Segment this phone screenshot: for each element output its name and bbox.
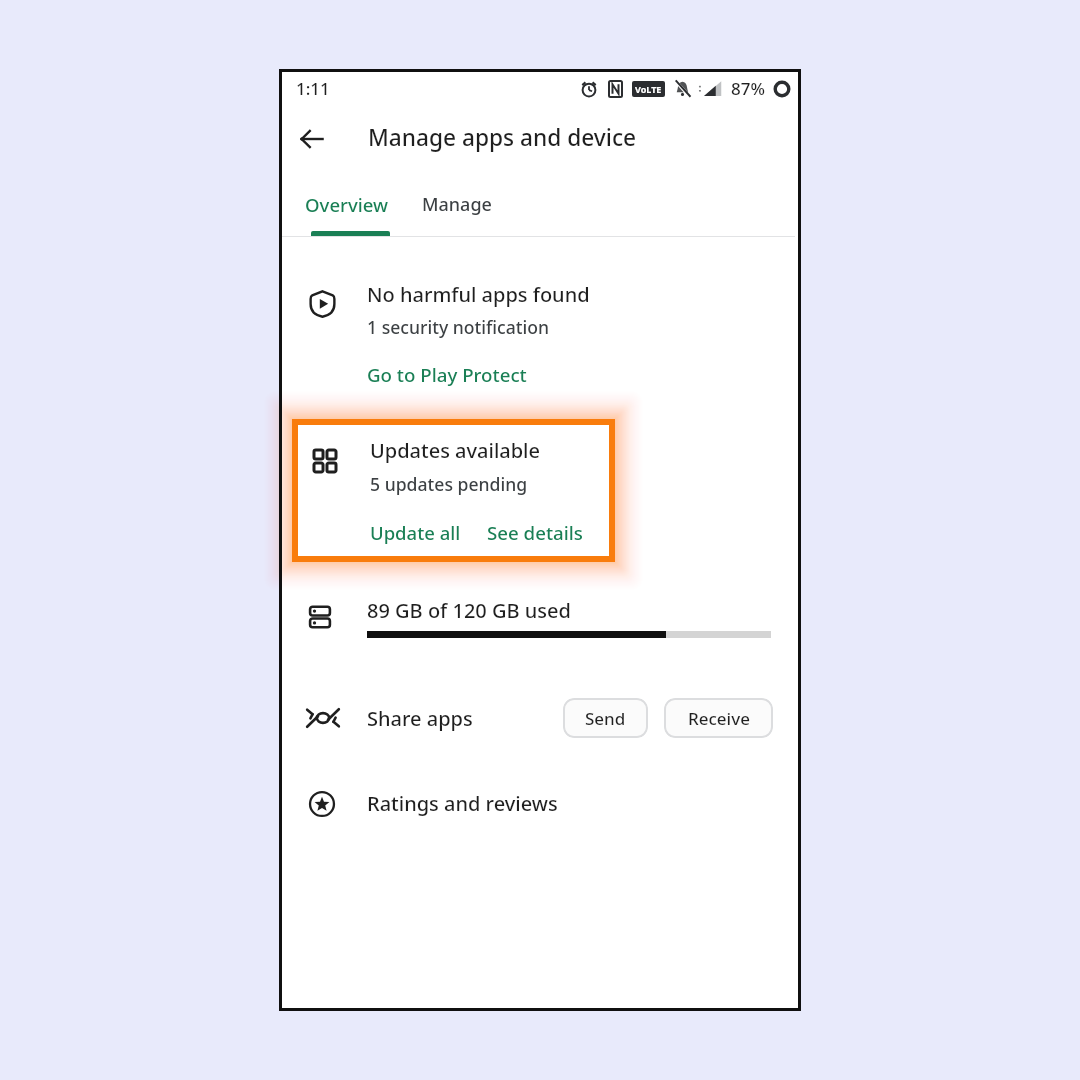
- button[interactable]: Update all: [370, 520, 461, 545]
- staticText: 1 security notification: [367, 315, 550, 339]
- staticText: 1:11: [296, 77, 330, 100]
- staticText: Send: [585, 707, 626, 730]
- staticText: No harmful apps found: [367, 281, 590, 308]
- staticText: Manage: [422, 192, 492, 217]
- button[interactable]: Ratings and reviews: [279, 767, 795, 839]
- button[interactable]: No harmful apps found: [279, 265, 795, 355]
- button[interactable]: Share apps: [279, 681, 549, 755]
- button[interactable]: See details: [487, 520, 583, 545]
- staticText: 5 updates pending: [370, 472, 528, 496]
- button[interactable]: Back: [289, 116, 335, 162]
- staticText: Overview: [305, 192, 389, 217]
- button[interactable]: Overview: [296, 185, 398, 224]
- staticText: 89 GB of 120 GB used: [367, 597, 571, 624]
- staticText: VoLTE: [635, 83, 662, 95]
- button[interactable]: Receive: [664, 698, 773, 738]
- staticText: Go to Play Protect: [367, 362, 527, 387]
- staticText: Ratings and reviews: [367, 790, 558, 817]
- staticText: Receive: [688, 707, 750, 730]
- staticText: 87%: [731, 77, 765, 100]
- staticText: Share apps: [367, 705, 473, 732]
- staticText: See details: [487, 520, 583, 545]
- button[interactable]: 89 GB of 120 GB used: [279, 584, 795, 659]
- staticText: Manage apps and device: [368, 122, 637, 153]
- button[interactable]: Go to Play Protect: [359, 354, 535, 395]
- button[interactable]: Updates available: [292, 419, 615, 562]
- button[interactable]: Manage: [413, 185, 501, 224]
- staticText: Update all: [370, 520, 461, 545]
- staticText: Updates available: [370, 437, 540, 464]
- button[interactable]: Send: [563, 698, 648, 738]
